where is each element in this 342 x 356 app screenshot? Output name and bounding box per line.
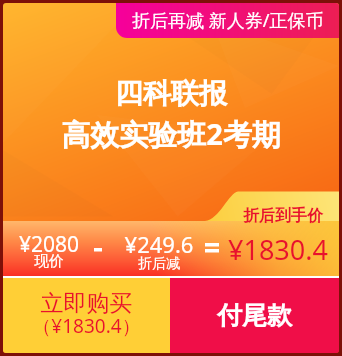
staticText: ¥1830.4 (228, 231, 328, 268)
staticText: 高效实验班2考期 (3, 114, 339, 154)
staticText: ¥2080 (3, 230, 97, 259)
button[interactable]: 付尾款 (170, 278, 339, 353)
staticText: 四科联报 (3, 76, 339, 111)
staticText: 折后减 (119, 255, 199, 273)
button[interactable]: 立即购买 (3, 278, 170, 353)
staticText: 折后到手价 (243, 206, 323, 226)
staticText: 现价 (3, 252, 97, 271)
button[interactable]: 折后再减 新人券/正保币 (116, 3, 339, 38)
staticText: ¥249.6 (119, 229, 199, 259)
staticText: （¥1830.4） (3, 313, 170, 339)
staticText: 折后再减 新人券/正保币 (132, 8, 324, 33)
staticText: 付尾款 (170, 300, 339, 331)
staticText: 立即购买 (3, 289, 170, 318)
